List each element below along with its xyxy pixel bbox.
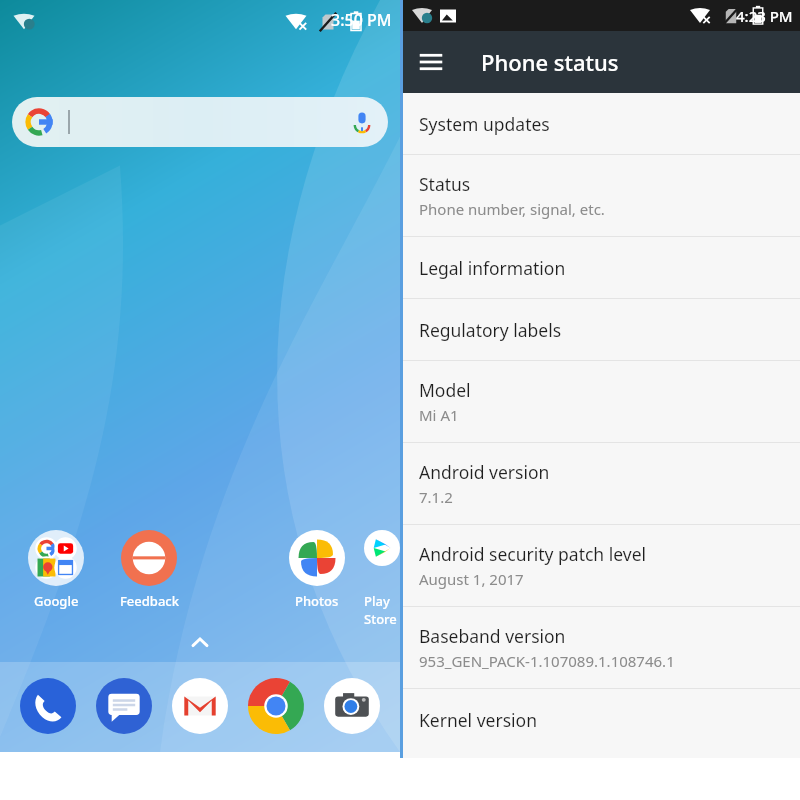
staticText: Google [34, 592, 79, 610]
staticText: Android version [419, 460, 550, 484]
staticText: Phone number, signal, etc. [419, 199, 605, 219]
staticText: System updates [419, 112, 550, 136]
staticText: Feedback [120, 592, 179, 610]
button[interactable]: Feedback [103, 530, 195, 610]
staticText: August 1, 2017 [419, 569, 524, 589]
button[interactable]: System updates [400, 93, 800, 154]
staticText: 953_GEN_PACK-1.107089.1.108746.1 [419, 651, 675, 671]
staticText: 3:50 PM [331, 9, 392, 31]
staticText: Status [419, 172, 471, 196]
button[interactable]: Legal information [400, 237, 800, 298]
button[interactable]: Google search [12, 97, 388, 147]
staticText: Phone status [481, 47, 619, 77]
button[interactable]: Messages [96, 678, 152, 734]
staticText: 4:23 PM [736, 6, 793, 26]
staticText: Regulatory labels [419, 318, 562, 342]
button[interactable]: Play Store [364, 530, 400, 628]
button[interactable]: Android security patch level [400, 525, 800, 606]
button[interactable]: Phone [20, 678, 76, 734]
staticText: 7.1.2 [419, 487, 453, 507]
button[interactable]: Regulatory labels [400, 299, 800, 360]
button[interactable]: Open app drawer [189, 632, 211, 654]
staticText: Legal information [419, 256, 566, 280]
staticText: Baseband version [419, 624, 566, 648]
button[interactable]: Camera [324, 678, 380, 734]
staticText: Android security patch level [419, 542, 647, 566]
button[interactable]: Photos [271, 530, 363, 610]
button[interactable]: Model [400, 361, 800, 442]
button[interactable]: Kernel version [400, 689, 800, 750]
staticText: Mi A1 [419, 405, 459, 425]
button[interactable]: Open navigation menu [400, 31, 462, 93]
staticText: Play Store [364, 592, 400, 628]
staticText: Photos [295, 592, 339, 610]
button[interactable]: Baseband version [400, 607, 800, 688]
button[interactable]: Status [400, 155, 800, 236]
button[interactable]: Gmail [172, 678, 228, 734]
staticText: Model [419, 378, 471, 402]
staticText: Kernel version [419, 708, 537, 732]
button[interactable]: Chrome [248, 678, 304, 734]
button[interactable]: Google [10, 530, 102, 610]
button[interactable]: Android version [400, 443, 800, 524]
